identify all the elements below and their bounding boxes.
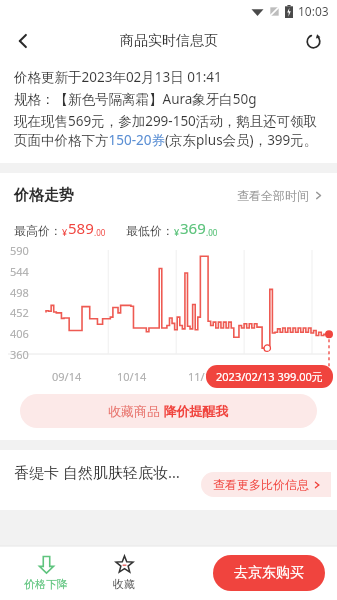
button[interactable]: 收藏商品 降价提醒我 bbox=[20, 394, 317, 428]
staticText: 查看更多比价信息 bbox=[213, 477, 309, 492]
staticText: 544 bbox=[10, 264, 29, 279]
staticText: .00 bbox=[94, 227, 106, 238]
staticText: 价格下降 bbox=[24, 577, 68, 591]
staticText: 最低价： bbox=[126, 223, 174, 238]
button[interactable]: 查看全部时间 bbox=[235, 185, 325, 206]
button[interactable]: Refresh bbox=[295, 23, 331, 59]
staticText: 收藏商品 降价提醒我 bbox=[108, 402, 229, 420]
staticText: 现在现售569元，参加299-150活动，鹅且还可领取页面中价格下方150-20… bbox=[14, 112, 325, 149]
staticText: 590 bbox=[10, 243, 29, 258]
staticText: .00 bbox=[206, 227, 218, 238]
staticText: 498 bbox=[10, 285, 29, 300]
staticText: 去京东购买 bbox=[234, 564, 304, 582]
staticText: 规格：【新色号隔离霜】Aura象牙白50g bbox=[14, 90, 257, 108]
staticText: 09/14 bbox=[52, 369, 82, 384]
button[interactable]: 去京东购买 bbox=[213, 555, 325, 591]
staticText: 10/14 bbox=[117, 369, 147, 384]
staticText: 452 bbox=[10, 305, 29, 320]
button[interactable]: 收藏 bbox=[96, 546, 152, 600]
staticText: 收藏 bbox=[113, 577, 135, 591]
staticText: 11/13 bbox=[188, 369, 218, 384]
staticText: ¥ bbox=[62, 226, 68, 238]
staticText: ¥ bbox=[174, 226, 180, 238]
button[interactable]: Back bbox=[4, 22, 42, 60]
staticText: 360 bbox=[10, 347, 29, 362]
button[interactable]: 查看更多比价信息 bbox=[201, 472, 331, 497]
staticText: 最高价： bbox=[14, 223, 62, 238]
staticText: 商品实时信息页 bbox=[120, 32, 218, 50]
staticText: 价格更新于2023年02月13日 01:41 bbox=[14, 68, 222, 86]
staticText: 369 bbox=[180, 218, 206, 238]
staticText: 查看全部时间 bbox=[237, 188, 309, 203]
staticText: 2023/02/13 399.00元 bbox=[216, 369, 323, 384]
staticText: 406 bbox=[10, 326, 29, 341]
staticText: 价格走势 bbox=[14, 186, 74, 205]
staticText: 香缇卡 自然肌肤轻底妆… bbox=[14, 462, 180, 482]
staticText: 589 bbox=[68, 218, 94, 238]
staticText: 10:03 bbox=[298, 3, 329, 19]
button[interactable]: 价格下降 bbox=[18, 546, 74, 600]
